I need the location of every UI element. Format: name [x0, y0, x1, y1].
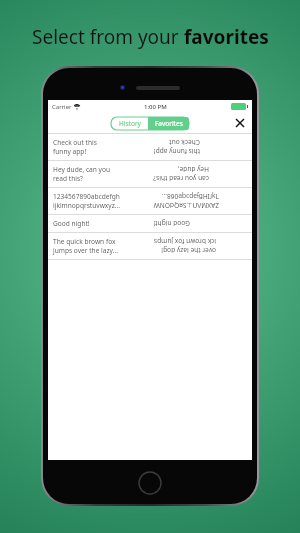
button[interactable]: Check out this funny app!: [48, 134, 252, 160]
staticText: Good night!: [153, 219, 190, 228]
staticText: Carrier: [52, 103, 72, 111]
staticText: ZAXMΛՈ⊥SяQdONW ꞀʞſIHƃɟǝpɔqɐ068...: [153, 192, 219, 210]
staticText: Select from your: [32, 24, 184, 50]
button[interactable]: The quick brown fox jumps over the lazy.…: [48, 233, 252, 259]
button[interactable]: Good night!: [48, 215, 252, 232]
button[interactable]: Hey dude, can you read this?: [48, 161, 252, 187]
staticText: Good night!: [53, 219, 90, 228]
button[interactable]: Close: [233, 116, 247, 130]
staticText: 1:00 PM: [144, 103, 167, 111]
staticText: Hey dude, can you read this?: [53, 165, 111, 183]
button[interactable]: History: [111, 117, 148, 130]
staticText: favorites: [184, 24, 269, 50]
button[interactable]: Favorites: [148, 117, 189, 130]
staticText: can you read this? Hey dude,: [153, 165, 209, 183]
staticText: 1234567890abcdefgh ijklmnopqrstuvwxyz...: [53, 192, 121, 210]
staticText: over the lazy dog! ick brown fox jumps: [153, 237, 216, 255]
staticText: History: [119, 119, 141, 128]
staticText: Check out this funny app!: [53, 138, 97, 156]
button[interactable]: 1234567890abcdefgh ijklmnopqrstuvwxyz...: [48, 188, 252, 214]
staticText: The quick brown fox jumps over the lazy.…: [53, 237, 119, 255]
staticText: this funny app! Check out: [153, 138, 200, 156]
staticText: Favorites: [155, 119, 183, 128]
